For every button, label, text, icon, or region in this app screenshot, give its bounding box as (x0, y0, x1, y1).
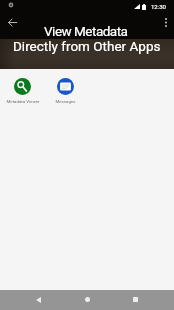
staticText: Messages (55, 99, 76, 104)
button[interactable]: Recents (126, 290, 145, 309)
button[interactable]: Back (29, 290, 48, 309)
button[interactable]: More options (158, 14, 174, 30)
button[interactable]: Home (78, 290, 97, 309)
button[interactable]: Back (4, 14, 20, 30)
button[interactable]: Messages (44, 78, 87, 104)
staticText: View Metadata (44, 23, 128, 39)
staticText: 12:30 (151, 3, 166, 10)
staticText: Directly from Other Apps (13, 38, 161, 54)
button[interactable]: Metadata Viewer (1, 78, 44, 104)
staticText: Metadata Viewer (6, 99, 40, 104)
